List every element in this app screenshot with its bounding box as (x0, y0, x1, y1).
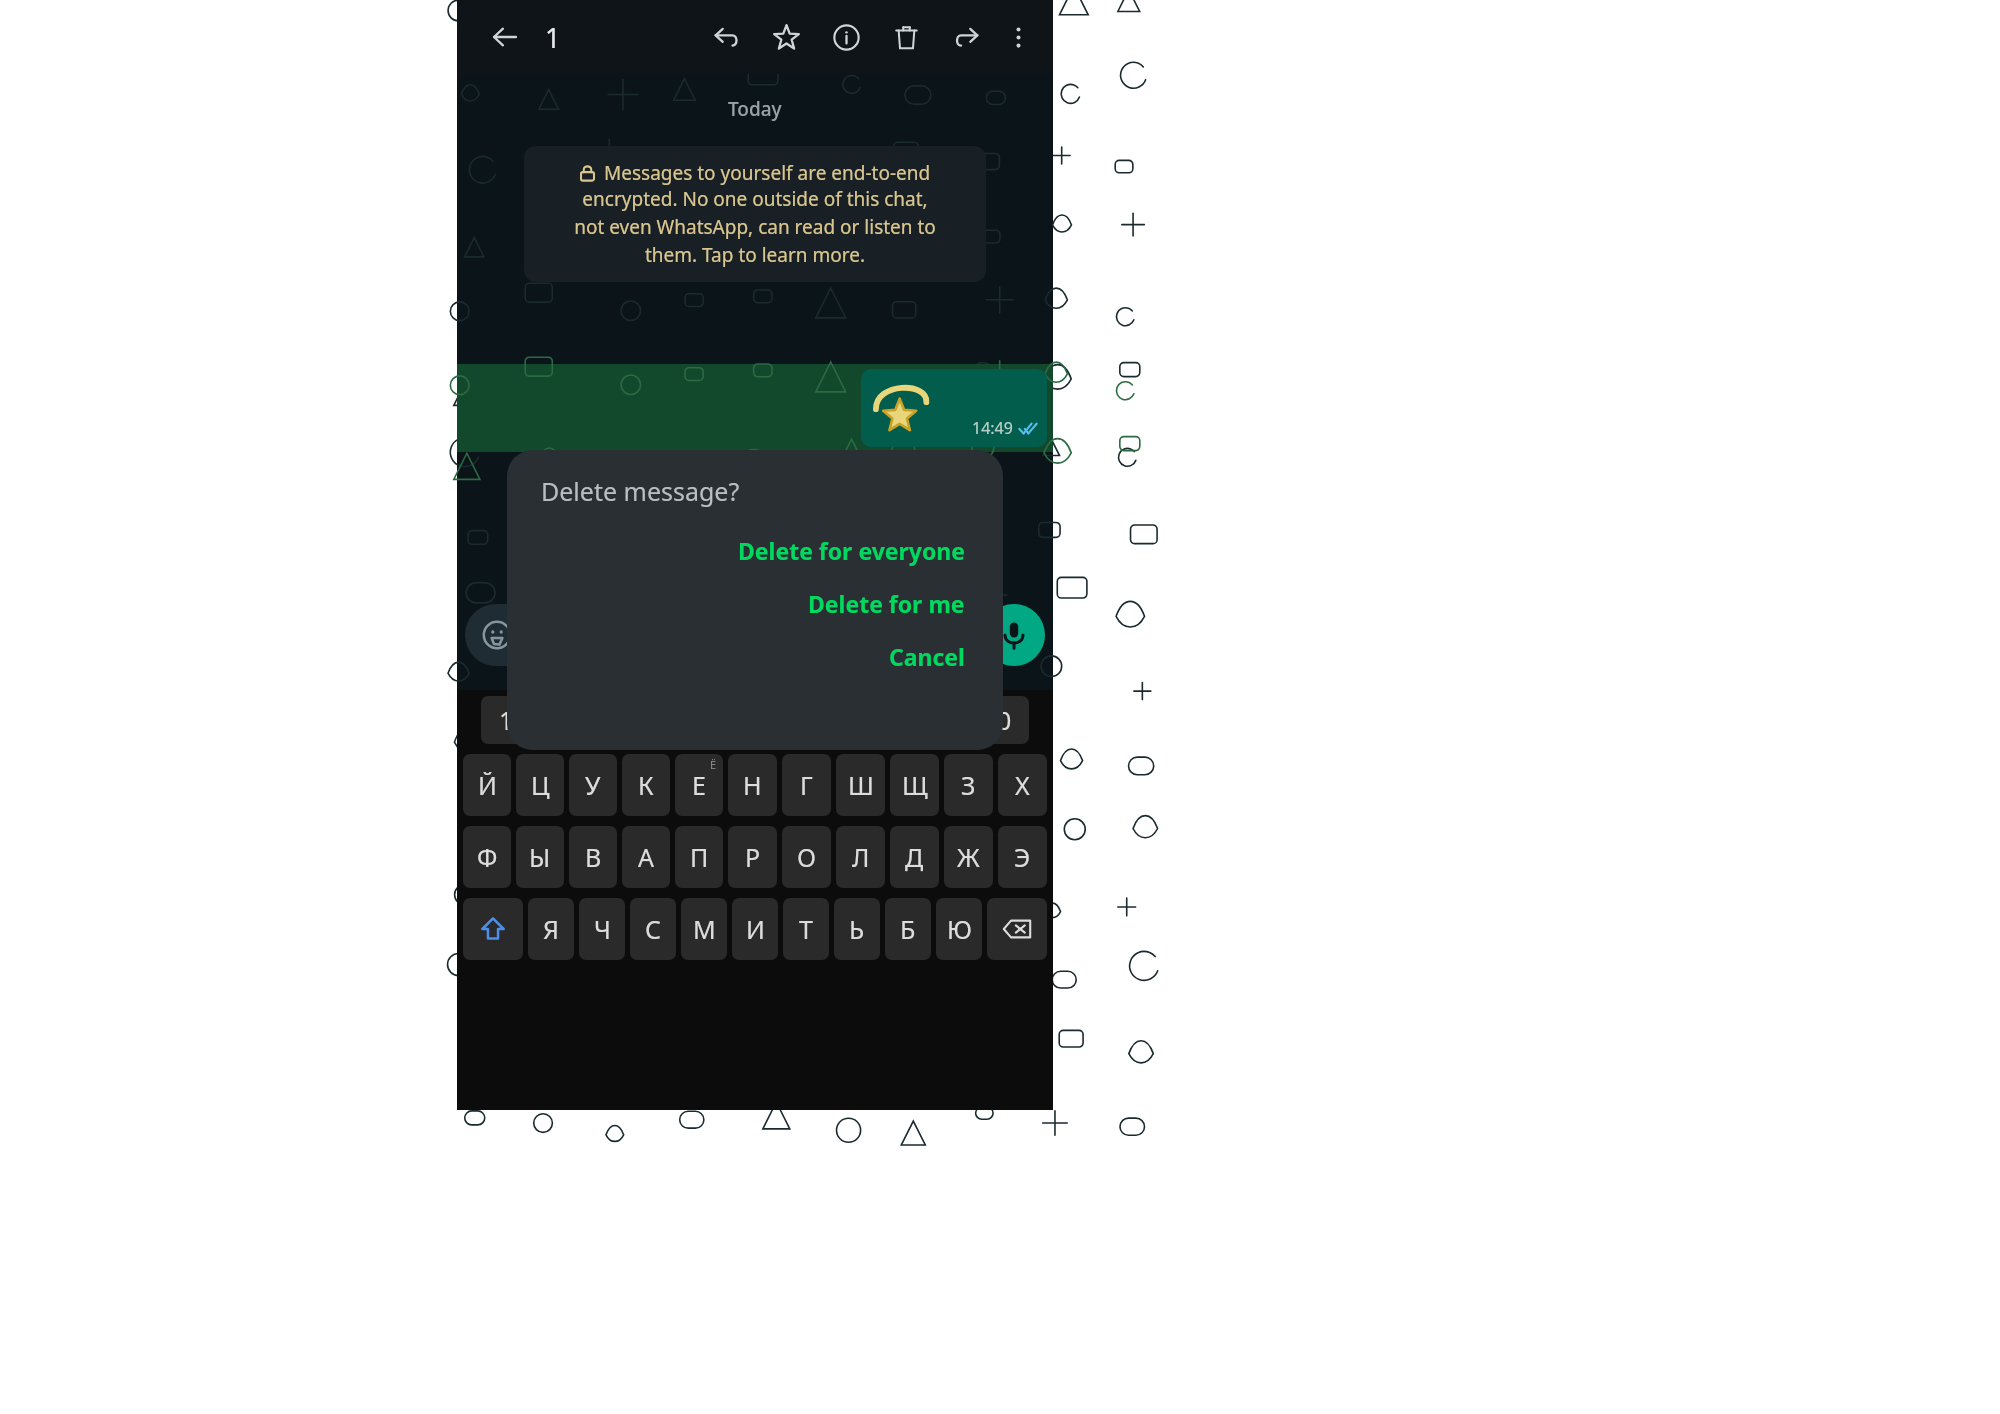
button[interactable]: 14:49 (861, 369, 1047, 447)
button[interactable]: Ц (516, 754, 564, 816)
staticText: Ь (849, 912, 865, 946)
button[interactable]: Backspace (987, 898, 1047, 960)
button[interactable]: З (944, 754, 993, 816)
button[interactable]: Shift (463, 898, 523, 960)
staticText: З (961, 768, 976, 802)
staticText: Ы (529, 840, 551, 874)
staticText: Ю (947, 912, 972, 946)
staticText: Н (743, 768, 762, 802)
button[interactable]: Э (998, 826, 1047, 888)
button[interactable]: Voice message (983, 604, 1045, 666)
button[interactable]: Ь (834, 898, 880, 960)
staticText: В (585, 840, 602, 874)
button[interactable]: А (622, 826, 670, 888)
staticText: Т (799, 912, 813, 946)
button[interactable]: У (569, 754, 617, 816)
staticText: М (693, 912, 716, 946)
button[interactable]: Ж (944, 826, 993, 888)
button[interactable]: Н (728, 754, 777, 816)
button[interactable]: К (622, 754, 670, 816)
button[interactable]: М (681, 898, 727, 960)
staticText: Ф (477, 840, 498, 874)
button[interactable]: Delete for me (802, 585, 971, 622)
button[interactable]: Р (728, 826, 777, 888)
button[interactable]: О (782, 826, 831, 888)
button[interactable]: Е (675, 754, 723, 816)
staticText: Х (1015, 768, 1030, 802)
staticText: О (797, 840, 817, 874)
staticText: Л (852, 840, 870, 874)
button[interactable]: Delete (885, 16, 927, 58)
button[interactable]: Г (782, 754, 831, 816)
button[interactable]: П (675, 826, 723, 888)
button[interactable]: Back (483, 15, 527, 59)
button[interactable]: Й (463, 754, 511, 816)
staticText: Ц (531, 768, 550, 802)
button[interactable]: Delete for everyone (732, 532, 971, 569)
button[interactable]: More options (997, 16, 1039, 58)
staticText: Ч (594, 912, 611, 946)
staticText: Delete for everyone (738, 535, 965, 566)
button[interactable]: Я (528, 898, 574, 960)
button[interactable]: Л (836, 826, 885, 888)
button[interactable]: Ф (463, 826, 511, 888)
button[interactable]: 1 (481, 696, 532, 744)
button[interactable]: Б (885, 898, 931, 960)
staticText: Ё (710, 757, 717, 772)
staticText: 14:49 (972, 417, 1013, 439)
button[interactable]: 0 (979, 696, 1029, 744)
button[interactable]: Emoji (479, 617, 515, 653)
staticText: Д (905, 840, 924, 874)
button[interactable]: В (569, 826, 617, 888)
button[interactable]: С (630, 898, 676, 960)
button[interactable]: Х (998, 754, 1047, 816)
staticText: Э (1014, 840, 1031, 874)
staticText: Щ (902, 768, 928, 802)
button[interactable]: Emoji (465, 604, 989, 666)
staticText: Р (745, 840, 761, 874)
staticText: Delete message? (541, 474, 740, 508)
button[interactable]: Щ (890, 754, 939, 816)
button[interactable]: Д (890, 826, 939, 888)
staticText: Е (692, 768, 706, 802)
button[interactable]: Ч (579, 898, 625, 960)
button[interactable]: Star (765, 16, 807, 58)
staticText: К (638, 768, 654, 802)
staticText: 1 (499, 703, 514, 737)
button[interactable]: Ш (836, 754, 885, 816)
staticText: С (645, 912, 662, 946)
staticText: А (638, 840, 654, 874)
button[interactable]: Ы (516, 826, 564, 888)
button[interactable]: Cancel (883, 638, 971, 675)
staticText: У (585, 768, 601, 802)
button[interactable]: Forward (945, 16, 987, 58)
staticText: Й (478, 768, 497, 802)
button[interactable]: Reply (705, 16, 747, 58)
staticText: Today (728, 96, 782, 122)
staticText: Я (543, 912, 559, 946)
button[interactable]: Ю (936, 898, 982, 960)
staticText: Cancel (889, 641, 965, 672)
button[interactable]: И (732, 898, 778, 960)
button[interactable]: Info (825, 16, 867, 58)
button[interactable]: Messages to yourself are end-to-end (524, 146, 986, 282)
button[interactable]: Т (783, 898, 829, 960)
staticText: Delete for me (808, 588, 965, 619)
staticText: encrypted. No one outside of this chat, … (574, 186, 936, 268)
staticText: Messages to yourself are end-to-end (604, 160, 931, 186)
